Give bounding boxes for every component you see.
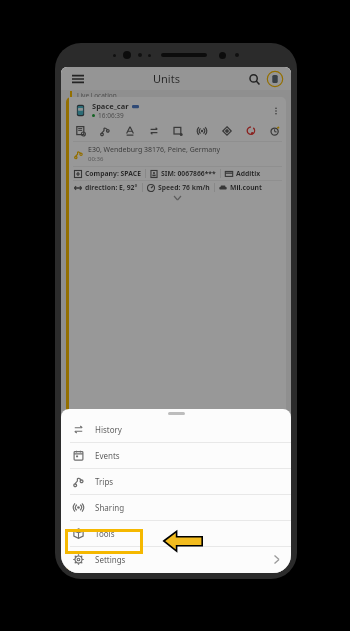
staticText: Sharing: [95, 502, 125, 513]
staticText: 16:06:39: [98, 111, 124, 120]
staticText: Space_car: [92, 101, 129, 111]
button[interactable]: Events: [61, 443, 291, 468]
button[interactable]: Action 3: [147, 124, 160, 137]
staticText: direction: E, 92°: [85, 183, 138, 192]
button[interactable]: Menu: [69, 70, 87, 88]
button[interactable]: Sharing: [61, 495, 291, 520]
button[interactable]: Action 7: [244, 124, 257, 137]
staticText: SIM: 0067866***: [161, 169, 216, 178]
button[interactable]: History: [61, 417, 291, 442]
button[interactable]: Action 2: [123, 124, 136, 137]
button[interactable]: Search: [245, 70, 263, 88]
staticText: Events: [95, 450, 120, 461]
staticText: History: [95, 424, 122, 435]
button[interactable]: Action 8: [268, 124, 281, 137]
button[interactable]: Action 6: [220, 124, 233, 137]
button[interactable]: Action 0: [74, 124, 87, 137]
staticText: Company: SPACE: [85, 169, 141, 178]
button[interactable]: Action 1: [98, 124, 111, 137]
staticText: Trips: [95, 476, 114, 487]
staticText: Settings: [95, 554, 126, 565]
button[interactable]: Action 5: [195, 124, 208, 137]
staticText: Speed: 76 km/h: [158, 183, 210, 192]
staticText: Live Location: [77, 91, 117, 97]
staticText: Tools: [95, 528, 115, 539]
button[interactable]: Space_car: [66, 97, 286, 573]
staticText: Additix: [236, 169, 261, 178]
staticText: E30, Wendeburg 38176, Peine, Germany: [88, 145, 221, 155]
staticText: Mil.count: [230, 183, 262, 192]
button[interactable]: Settings: [61, 547, 291, 572]
staticText: 00:36: [88, 155, 104, 163]
button[interactable]: Trips: [61, 469, 291, 494]
button[interactable]: More options: [269, 104, 282, 117]
button[interactable]: Tools: [61, 521, 291, 546]
button[interactable]: Action 4: [171, 124, 184, 137]
staticText: Units: [153, 71, 180, 86]
button[interactable]: Account: [266, 70, 283, 87]
